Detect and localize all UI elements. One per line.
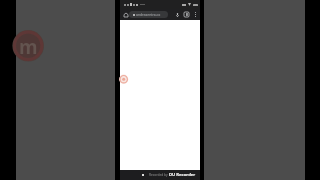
- staticText: DU Recorder: [169, 172, 196, 178]
- button[interactable]: More options: [192, 10, 199, 19]
- button[interactable]: Home: [122, 10, 129, 19]
- button[interactable]: andreaentra.co: [129, 11, 168, 18]
- staticText: m: [19, 34, 38, 60]
- staticText: 8: [186, 13, 188, 17]
- staticText: andreaentra.co: [136, 12, 161, 17]
- staticText: Recorded by: [149, 173, 168, 177]
- button[interactable]: Tabs: [183, 10, 190, 19]
- button[interactable]: Voice search: [174, 10, 181, 19]
